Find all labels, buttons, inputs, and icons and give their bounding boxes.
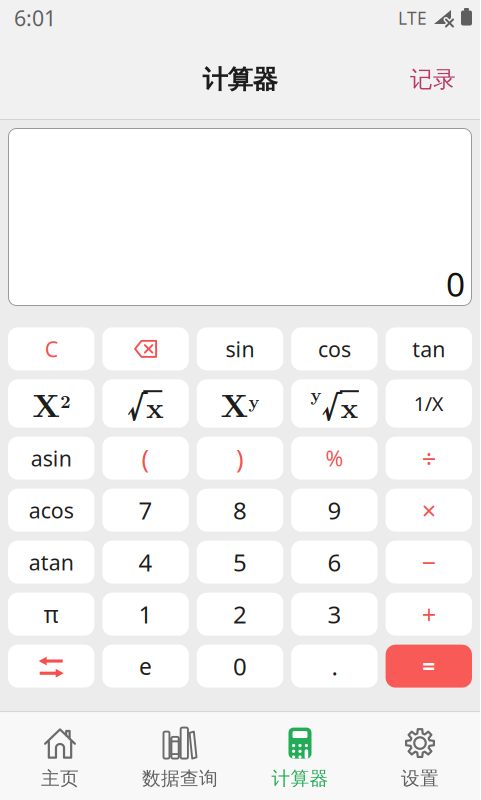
button[interactable]: ( [102, 437, 189, 480]
staticText: 2 [233, 598, 247, 630]
button[interactable]: 8 [197, 489, 283, 532]
button[interactable]: Swap [8, 645, 94, 688]
button[interactable]: 数据查询 [120, 727, 240, 790]
staticText: ( [142, 441, 150, 475]
staticText: acos [29, 496, 74, 524]
button[interactable]: Y-th root [291, 379, 378, 428]
button[interactable]: tan [386, 327, 472, 370]
button[interactable]: 设置 [360, 727, 480, 790]
staticText: 6 [327, 546, 341, 578]
staticText: X2 [32, 381, 70, 426]
staticText: atan [29, 548, 74, 576]
staticText: 计算器 [202, 64, 277, 95]
staticText: 9 [327, 494, 341, 526]
button[interactable]: + [386, 593, 472, 636]
staticText: − [422, 545, 436, 579]
staticText: % [325, 444, 343, 472]
button[interactable]: 9 [291, 489, 378, 532]
staticText: + [422, 597, 436, 631]
button[interactable]: 主页 [0, 727, 120, 790]
button[interactable]: 1/X [386, 379, 472, 428]
button[interactable]: 3 [291, 593, 378, 636]
staticText: 3 [327, 598, 341, 630]
button[interactable]: Square root [102, 379, 189, 428]
button[interactable]: sin [197, 327, 283, 370]
staticText: ÷ [422, 441, 436, 475]
button[interactable]: 2 [197, 593, 283, 636]
button[interactable]: cos [291, 327, 378, 370]
staticText: 数据查询 [142, 767, 218, 790]
button[interactable]: 记录 [410, 64, 480, 91]
button[interactable]: e [102, 645, 189, 688]
button[interactable]: ) [197, 437, 283, 480]
staticText: 7 [139, 494, 153, 526]
staticText: 主页 [41, 767, 79, 790]
button[interactable]: 5 [197, 541, 283, 584]
staticText: 1/X [414, 390, 444, 417]
staticText: 4 [139, 546, 153, 578]
button[interactable]: C [8, 327, 94, 370]
staticText: 6:01 [14, 4, 56, 32]
button[interactable]: = [386, 645, 472, 688]
button[interactable]: . [291, 645, 378, 688]
staticText: y√x [310, 379, 358, 428]
staticText: asin [31, 444, 72, 472]
staticText: ) [236, 441, 244, 475]
staticText: cos [318, 335, 351, 363]
button[interactable]: − [386, 541, 472, 584]
staticText: 设置 [401, 767, 439, 790]
staticText: √x [127, 379, 164, 428]
staticText: 0 [446, 262, 465, 306]
staticText: = [422, 651, 435, 681]
staticText: 记录 [410, 66, 456, 93]
staticText: π [44, 599, 59, 629]
staticText: Xy [220, 381, 259, 426]
staticText: LTE [398, 6, 427, 29]
button[interactable]: π [8, 593, 94, 636]
button[interactable]: Xy [197, 379, 283, 428]
button[interactable]: % [291, 437, 378, 480]
staticText: 8 [233, 494, 247, 526]
button[interactable]: asin [8, 437, 94, 480]
staticText: e [139, 651, 152, 681]
button[interactable]: × [386, 489, 472, 532]
button[interactable]: ÷ [386, 437, 472, 480]
staticText: . [331, 650, 337, 682]
staticText: × [422, 493, 436, 527]
button[interactable]: Backspace [102, 327, 189, 370]
button[interactable]: 7 [102, 489, 189, 532]
button[interactable]: 计算器 [240, 727, 360, 790]
button[interactable]: X2 [8, 379, 94, 428]
button[interactable]: acos [8, 489, 94, 532]
staticText: sin [225, 335, 254, 363]
button[interactable]: 1 [102, 593, 189, 636]
button[interactable]: atan [8, 541, 94, 584]
button[interactable]: 6 [291, 541, 378, 584]
staticText: 1 [139, 598, 153, 630]
staticText: C [45, 335, 58, 363]
button[interactable]: 4 [102, 541, 189, 584]
staticText: 计算器 [271, 767, 328, 790]
staticText: tan [412, 335, 445, 363]
staticText: 5 [233, 546, 247, 578]
staticText: 0 [233, 650, 247, 682]
button[interactable]: 0 [197, 645, 283, 688]
